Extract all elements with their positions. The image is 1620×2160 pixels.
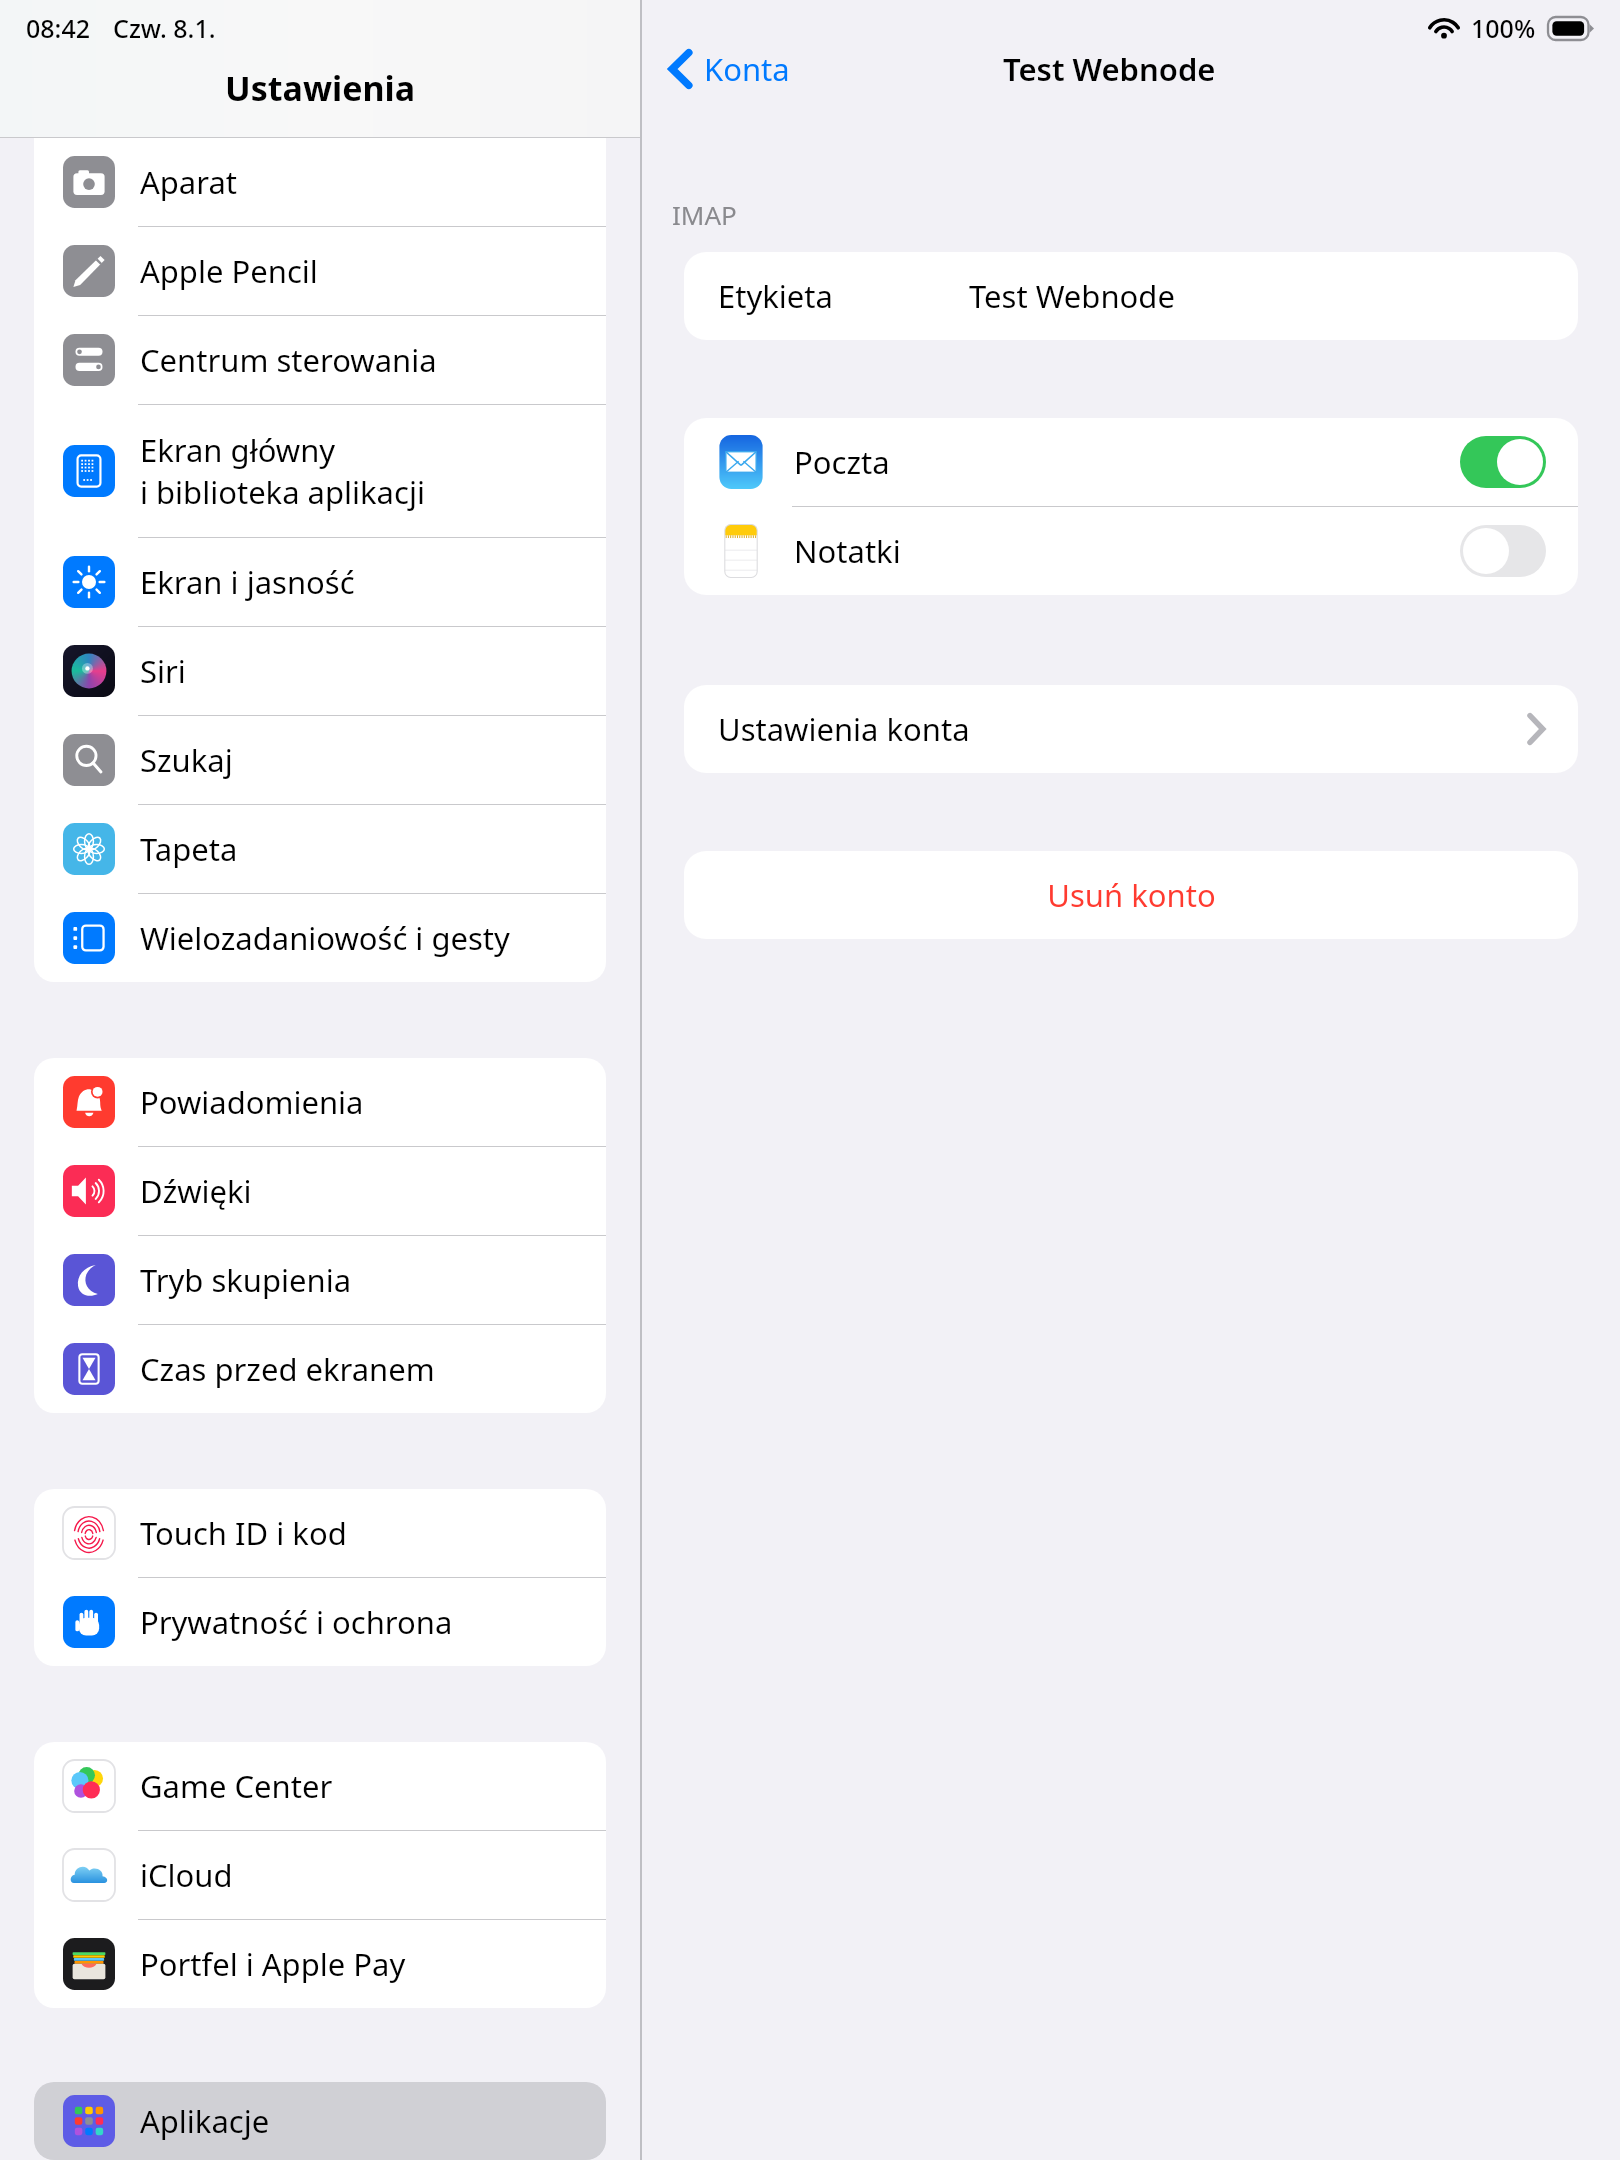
button[interactable]: Aplikacje	[34, 2082, 606, 2160]
button[interactable]: Usuń konto	[684, 851, 1578, 939]
staticText: Ustawienia konta	[718, 708, 970, 750]
staticText: Wielozadaniowość i gesty	[140, 917, 510, 959]
button[interactable]: Ustawienia konta	[684, 685, 1578, 773]
staticText: Apple Pencil	[140, 250, 318, 292]
staticText: Ekran główny	[140, 429, 336, 471]
staticText: Game Center	[140, 1765, 333, 1807]
button[interactable]: Portfel i Apple Pay	[34, 1920, 606, 2008]
button[interactable]: Game Center	[34, 1742, 606, 1830]
button[interactable]: Centrum sterowania	[34, 316, 606, 404]
staticText: Test Webnode	[969, 275, 1175, 317]
staticText: Aplikacje	[140, 2100, 270, 2142]
staticText: IMAP	[672, 197, 737, 232]
button[interactable]: Poczta	[684, 418, 1578, 506]
staticText: 100%	[1471, 11, 1536, 45]
staticText: Siri	[140, 650, 186, 692]
staticText: 08:42	[26, 11, 91, 45]
staticText: Touch ID i kod	[140, 1512, 347, 1554]
staticText: iCloud	[140, 1854, 233, 1896]
staticText: Centrum sterowania	[140, 339, 437, 381]
button[interactable]: Czas przed ekranem	[34, 1325, 606, 1413]
staticText: Powiadomienia	[140, 1081, 364, 1123]
staticText: Etykieta	[718, 275, 833, 317]
staticText: Prywatność i ochrona	[140, 1601, 453, 1643]
staticText: Szukaj	[140, 739, 233, 781]
button[interactable]: Dźwięki	[34, 1147, 606, 1235]
button[interactable]: Apple Pencil	[34, 227, 606, 315]
button[interactable]: Aparat	[34, 138, 606, 226]
button[interactable]: Etykieta	[684, 252, 1578, 340]
staticText: Notatki	[794, 530, 901, 572]
button[interactable]: Tryb skupienia	[34, 1236, 606, 1324]
staticText: Ekran i jasność	[140, 561, 355, 603]
staticText: Czw. 8.1.	[113, 11, 216, 45]
button[interactable]: Wielozadaniowość i gesty	[34, 894, 606, 982]
staticText: Tapeta	[140, 828, 238, 870]
staticText: Dźwięki	[140, 1170, 252, 1212]
staticText: Czas przed ekranem	[140, 1348, 435, 1390]
button[interactable]: Ekran główny	[34, 405, 606, 537]
button[interactable]: Tapeta	[34, 805, 606, 893]
staticText: Portfel i Apple Pay	[140, 1943, 406, 1985]
staticText: Konta	[704, 48, 790, 90]
button[interactable]: Włącz Notatki	[1460, 525, 1546, 577]
button[interactable]: Touch ID i kod	[34, 1489, 606, 1577]
staticText: Ustawienia	[225, 65, 416, 111]
button[interactable]: Wyłącz Poczta	[1460, 436, 1546, 488]
button[interactable]: Konta	[656, 40, 802, 98]
staticText: Test Webnode	[1003, 48, 1216, 90]
button[interactable]: Siri	[34, 627, 606, 715]
staticText: Usuń konto	[1047, 874, 1216, 916]
button[interactable]: Ekran i jasność	[34, 538, 606, 626]
staticText: i biblioteka aplikacji	[140, 471, 425, 513]
button[interactable]: Notatki	[684, 507, 1578, 595]
button[interactable]: Szukaj	[34, 716, 606, 804]
staticText: Poczta	[794, 441, 890, 483]
button[interactable]: iCloud	[34, 1831, 606, 1919]
staticText: Tryb skupienia	[140, 1259, 352, 1301]
button[interactable]: Powiadomienia	[34, 1058, 606, 1146]
staticText: Aparat	[140, 161, 238, 203]
button[interactable]: Prywatność i ochrona	[34, 1578, 606, 1666]
